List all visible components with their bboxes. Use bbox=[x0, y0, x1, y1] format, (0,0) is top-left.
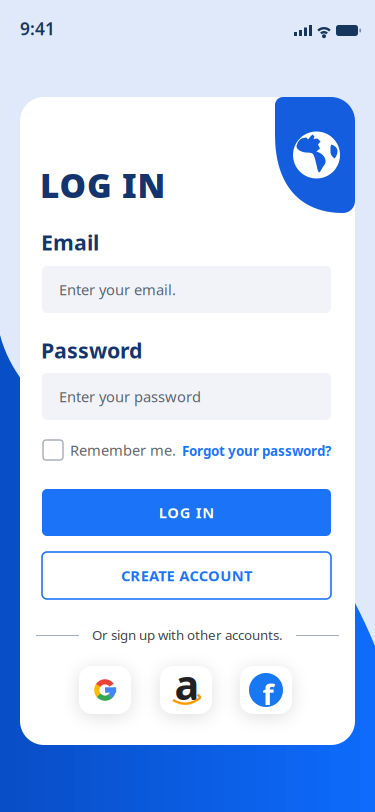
staticText: Or sign up with other accounts. bbox=[92, 626, 283, 644]
staticText: f bbox=[262, 674, 273, 713]
button[interactable]: Forgot your password? bbox=[182, 442, 331, 460]
staticText: Email bbox=[41, 228, 99, 256]
staticText: 9:41 bbox=[20, 17, 55, 40]
staticText: Password bbox=[41, 336, 142, 364]
staticText: CREATE ACCOUNT bbox=[121, 566, 252, 585]
staticText: Enter your password bbox=[59, 387, 201, 406]
staticText: Remember me. bbox=[70, 440, 176, 460]
button[interactable]: Sign up with Google bbox=[79, 666, 131, 714]
button[interactable]: Sign up with Amazon bbox=[160, 666, 212, 714]
staticText: Enter your email. bbox=[59, 280, 176, 299]
staticText: Forgot your password? bbox=[182, 442, 331, 460]
staticText: LOG IN bbox=[159, 503, 214, 522]
button[interactable]: CREATE ACCOUNT bbox=[42, 552, 331, 599]
button[interactable]: Sign up with Facebook bbox=[240, 666, 292, 714]
button[interactable]: LOG IN bbox=[42, 489, 331, 536]
staticText: a bbox=[174, 657, 199, 711]
button[interactable]: Remember me. bbox=[43, 440, 176, 460]
staticText: LOG IN bbox=[40, 163, 165, 207]
